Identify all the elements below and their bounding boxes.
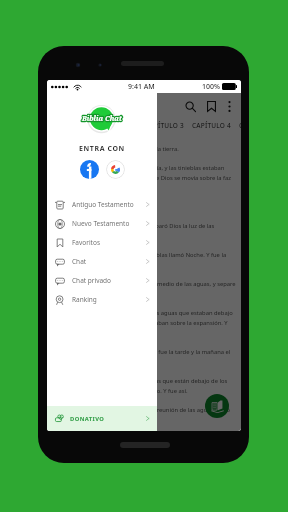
staticText: 10 Y llamó Dios a lo seco Tierra, y a la… xyxy=(54,406,236,424)
button[interactable]: Chat xyxy=(47,252,157,271)
button[interactable]: Favoritos xyxy=(47,233,157,252)
staticText: CAPÍTULO 4 xyxy=(192,121,231,130)
button[interactable]: Ranking xyxy=(47,290,157,309)
staticText: Nuevo Testamento xyxy=(72,219,130,228)
staticText: 5 Y llamó Dios a la luz Día, y a las tin… xyxy=(54,251,236,269)
button[interactable]: Marcadores xyxy=(202,97,220,115)
staticText: DONATIVO xyxy=(70,415,105,423)
staticText: 8 Y llamó Dios a la expansión Cielos. Y … xyxy=(54,348,236,366)
button[interactable]: ÍTULO 2 xyxy=(111,121,137,130)
button[interactable]: Nuevo Testamento xyxy=(47,214,157,233)
staticText: CAPÍTULO 3 xyxy=(145,121,184,130)
button[interactable]: Antiguo Testamento xyxy=(47,195,157,214)
staticText: Biblia Chat xyxy=(82,114,122,124)
staticText: 1 En el principio creó Dios los cielos y… xyxy=(54,145,179,153)
staticText: Antiguo Testamento xyxy=(72,200,134,209)
button[interactable]: Entra con Google xyxy=(106,160,125,179)
staticText: Favoritos xyxy=(72,238,101,247)
button[interactable]: Chat privado xyxy=(47,271,157,290)
staticText: 4 Y vio Dios que la luz era buena; y sep… xyxy=(54,222,236,240)
button[interactable]: Entra con Facebook xyxy=(80,160,99,179)
staticText: 9:41 AM xyxy=(128,82,155,92)
button[interactable]: Abrir libro xyxy=(205,394,229,418)
staticText: 7 E hizo Dios la expansión, y separó las… xyxy=(54,309,236,337)
button[interactable]: CAPÍTULO 5 xyxy=(239,121,241,130)
staticText: Chat privado xyxy=(72,276,112,285)
staticText: 2 Y la tierra estaba desordenada y vacía… xyxy=(54,164,236,192)
button[interactable]: DONATIVO xyxy=(47,406,157,431)
button[interactable]: CAPÍTULO 3 xyxy=(145,121,184,130)
staticText: 3 Y dijo Dios: Sea la luz; y fue la luz. xyxy=(54,203,150,211)
button[interactable]: Buscar xyxy=(181,97,199,115)
staticText: 9 Dijo también Dios: Júntense las aguas … xyxy=(54,377,236,395)
staticText: Biblia Chat xyxy=(82,114,122,124)
staticText: 100% xyxy=(202,82,220,92)
button[interactable]: CAPÍTULO 4 xyxy=(192,121,231,130)
staticText: ÍTULO 2 xyxy=(111,121,137,130)
button[interactable]: Más opciones xyxy=(221,98,237,114)
staticText: 6 Luego dijo Dios: Haya expansión en med… xyxy=(54,280,236,298)
staticText: Chat xyxy=(72,257,87,266)
staticText: Ranking xyxy=(72,295,97,304)
staticText: CAPÍTULO 5 xyxy=(239,121,241,130)
staticText: ENTRA CON xyxy=(79,144,125,154)
